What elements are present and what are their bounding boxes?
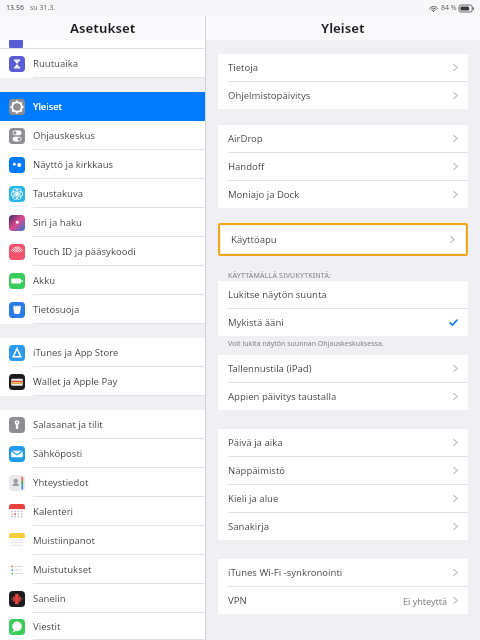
staticText: 84 % (441, 3, 457, 13)
staticText: VPN (228, 594, 247, 607)
button[interactable]: Akku (0, 266, 205, 295)
staticText: Ohjauskeskus (33, 129, 95, 142)
staticText: Asetukset (70, 19, 136, 37)
staticText: Sähköposti (33, 447, 83, 460)
staticText: Yleiset (321, 19, 365, 37)
staticText: Akku (33, 274, 56, 287)
button[interactable]: Touch ID ja pääsykoodi (0, 237, 205, 266)
button[interactable]: Mykistä ääni (218, 309, 468, 336)
button[interactable]: Siri ja haku (0, 208, 205, 237)
staticText: su 31.3. (30, 3, 56, 13)
button[interactable]: Viestit (0, 613, 205, 640)
button[interactable]: Sanakirja (218, 513, 468, 540)
button[interactable]: Yleiset (0, 92, 205, 121)
button[interactable]: Käyttöapu (221, 226, 465, 253)
button[interactable]: iTunes Wi-Fi -synkronointi (218, 559, 468, 586)
button[interactable]: Kalenteri (0, 497, 205, 526)
staticText: KÄYTTÄMÄLLÄ SIVUKYTKINTÄ: (228, 271, 332, 281)
button[interactable]: Appien päivitys taustalla (218, 383, 468, 410)
staticText: Kalenteri (33, 505, 74, 518)
staticText: Appien päivitys taustalla (228, 390, 337, 403)
button[interactable]: Muistiinpanot (0, 526, 205, 555)
staticText: Siri ja haku (33, 216, 82, 229)
button[interactable]: Sähköposti (0, 439, 205, 468)
staticText: Moniajo ja Dock (228, 188, 300, 201)
staticText: Muistutukset (33, 563, 92, 576)
button[interactable]: Tallennustila (iPad) (218, 355, 468, 382)
staticText: Muistiinpanot (33, 534, 95, 547)
staticText: Ruutuaika (33, 57, 79, 70)
staticText: Näppäimistö (228, 464, 286, 477)
button[interactable]: VPN (218, 587, 468, 614)
staticText: Tietosuoja (33, 303, 80, 316)
staticText: AirDrop (228, 132, 263, 145)
button[interactable]: Muistutukset (0, 555, 205, 584)
staticText: Tallennustila (iPad) (228, 362, 312, 375)
button[interactable]: Ohjelmistopäivitys (218, 82, 468, 109)
staticText: Wallet ja Apple Pay (33, 375, 118, 388)
staticText: Sanakirja (228, 520, 269, 533)
staticText: Ei yhteyttä (403, 595, 448, 607)
staticText: Touch ID ja pääsykoodi (33, 245, 136, 258)
button[interactable]: Wallet ja Apple Pay (0, 367, 205, 396)
staticText: Handoff (228, 160, 265, 173)
button[interactable]: Ruutuaika (0, 49, 205, 78)
staticText: Yhteystiedot (33, 476, 89, 489)
staticText: Salasanat ja tilit (33, 418, 103, 431)
button[interactable]: Ohjauskeskus (0, 121, 205, 150)
staticText: 13.56 (6, 3, 24, 13)
button[interactable]: Tietoja (218, 54, 468, 81)
staticText: Näyttö ja kirkkaus (33, 158, 114, 171)
button[interactable]: Taustakuva (0, 179, 205, 208)
staticText: iTunes ja App Store (33, 346, 119, 359)
staticText: Tietoja (228, 61, 259, 74)
staticText: Päivä ja aika (228, 436, 283, 449)
staticText: Sanelin (33, 592, 66, 605)
button[interactable]: Päivä ja aika (218, 429, 468, 456)
button[interactable]: Salasanat ja tilit (0, 410, 205, 439)
button[interactable]: Yhteystiedot (0, 468, 205, 497)
button[interactable]: Tietosuoja (0, 295, 205, 324)
button[interactable]: Näyttö ja kirkkaus (0, 150, 205, 179)
staticText: Voit lukita näytön suunnan Ohjauskeskuks… (228, 339, 384, 349)
staticText: Kieli ja alue (228, 492, 279, 505)
staticText: Ohjelmistopäivitys (228, 89, 311, 102)
staticText: Yleiset (33, 100, 62, 113)
staticText: Käyttöapu (231, 233, 277, 246)
button[interactable]: Kieli ja alue (218, 485, 468, 512)
staticText: iTunes Wi-Fi -synkronointi (228, 566, 343, 579)
staticText: Lukitse näytön suunta (228, 288, 327, 301)
button[interactable]: Moniajo ja Dock (218, 181, 468, 208)
button[interactable]: Sanelin (0, 584, 205, 613)
button[interactable]: AirDrop (218, 125, 468, 152)
staticText: Taustakuva (33, 187, 84, 200)
button[interactable]: Näppäimistö (218, 457, 468, 484)
button[interactable]: Handoff (218, 153, 468, 180)
button[interactable]: iTunes ja App Store (0, 338, 205, 367)
button[interactable]: Lukitse näytön suunta (218, 281, 468, 308)
staticText: Mykistä ääni (228, 316, 284, 329)
staticText: Viestit (33, 620, 61, 633)
